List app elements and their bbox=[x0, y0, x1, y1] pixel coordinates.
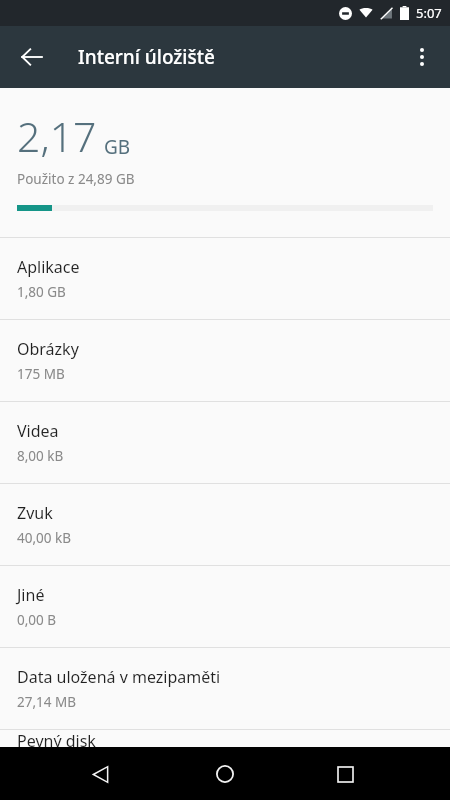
staticText: Interní úložiště bbox=[78, 44, 215, 70]
staticText: 2,17 bbox=[17, 108, 97, 164]
staticText: 40,00 kB bbox=[17, 529, 71, 547]
staticText: 0,00 B bbox=[17, 611, 57, 629]
button[interactable]: Aplikace bbox=[0, 238, 450, 319]
button[interactable]: Jiné bbox=[0, 566, 450, 647]
staticText: Obrázky bbox=[17, 338, 79, 360]
button[interactable]: Data uložená v mezipaměti bbox=[0, 648, 450, 729]
button[interactable]: Pevný disk bbox=[0, 730, 450, 747]
staticText: GB bbox=[104, 134, 131, 160]
staticText: Jiné bbox=[17, 584, 45, 606]
staticText: 8,00 kB bbox=[17, 447, 64, 465]
button[interactable]: Back bbox=[8, 33, 56, 81]
staticText: 5:07 bbox=[416, 4, 442, 22]
staticText: Pevný disk bbox=[17, 730, 96, 747]
button[interactable]: Back bbox=[76, 750, 124, 798]
button[interactable]: Obrázky bbox=[0, 320, 450, 401]
button[interactable]: Recent apps bbox=[321, 750, 369, 798]
button[interactable]: More options bbox=[398, 33, 446, 81]
button[interactable]: Zvuk bbox=[0, 484, 450, 565]
staticText: Data uložená v mezipaměti bbox=[17, 666, 221, 688]
staticText: 175 MB bbox=[17, 365, 65, 383]
staticText: 27,14 MB bbox=[17, 693, 77, 711]
staticText: 1,80 GB bbox=[17, 283, 66, 301]
button[interactable]: Videa bbox=[0, 402, 450, 483]
staticText: Videa bbox=[17, 420, 59, 442]
staticText: Použito z 24,89 GB bbox=[17, 170, 135, 188]
button[interactable]: Home bbox=[201, 750, 249, 798]
staticText: Zvuk bbox=[17, 502, 53, 524]
staticText: Aplikace bbox=[17, 256, 80, 278]
